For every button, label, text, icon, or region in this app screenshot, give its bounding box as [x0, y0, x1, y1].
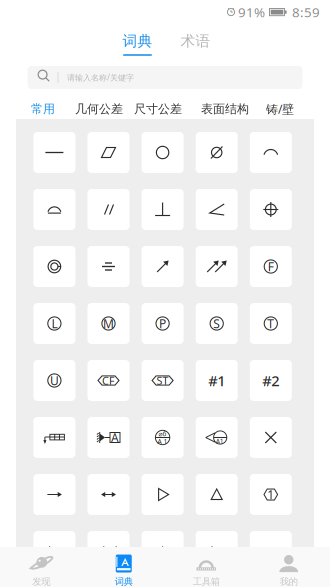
button[interactable]: Symbol	[87, 132, 129, 173]
button[interactable]: 发现	[0, 547, 82, 587]
button[interactable]: Symbol	[250, 189, 292, 230]
button[interactable]: Symbol	[196, 189, 238, 230]
staticText: ST	[157, 373, 169, 388]
button[interactable]: 词典	[82, 547, 165, 587]
button[interactable]: Symbol	[33, 303, 75, 344]
button[interactable]: Symbol	[142, 246, 184, 287]
staticText: 常用	[31, 102, 55, 116]
staticText: F	[268, 258, 274, 274]
button[interactable]: Symbol	[196, 360, 238, 401]
button[interactable]: Symbol	[33, 246, 75, 287]
button[interactable]: Symbol	[87, 303, 129, 344]
button[interactable]: Symbol	[33, 474, 75, 515]
staticText: A 1	[158, 437, 168, 446]
staticText: 我的	[280, 576, 298, 587]
staticText: 尺寸公差	[134, 102, 182, 116]
staticText: A	[111, 429, 119, 445]
staticText: 几何公差	[75, 102, 123, 116]
button[interactable]: 我的	[247, 547, 330, 587]
staticText: 发现	[32, 576, 50, 587]
staticText: S	[213, 315, 220, 331]
staticText: 术语	[180, 32, 210, 50]
staticText: M	[103, 315, 114, 331]
staticText: 1	[267, 486, 274, 502]
staticText: 请输入名称/关键字	[67, 72, 134, 83]
button[interactable]: Symbol	[33, 531, 75, 572]
button[interactable]: 几何公差	[75, 102, 123, 116]
staticText: A1	[216, 437, 224, 446]
button[interactable]: Symbol	[87, 360, 129, 401]
button[interactable]: 常用	[31, 102, 55, 116]
button[interactable]: Symbol	[142, 189, 184, 230]
staticText: L	[51, 315, 57, 331]
button[interactable]: 词典	[114, 33, 160, 57]
staticText: 表面结构	[201, 102, 249, 116]
button[interactable]: Symbol	[87, 474, 129, 515]
button[interactable]: Symbol	[33, 189, 75, 230]
staticText: 铸/壁	[266, 101, 294, 117]
staticText: CF	[102, 373, 115, 388]
button[interactable]: Symbol	[250, 303, 292, 344]
button[interactable]: Symbol	[196, 132, 238, 173]
button[interactable]: Symbol	[87, 246, 129, 287]
button[interactable]: Symbol	[196, 246, 238, 287]
button[interactable]: Symbol	[250, 360, 292, 401]
button[interactable]: Symbol	[250, 417, 292, 458]
staticText: 91%	[238, 3, 265, 21]
staticText: 词典	[115, 576, 133, 587]
button[interactable]: Symbol	[87, 531, 129, 572]
staticText: 词典	[122, 32, 152, 50]
staticText: ⌀6	[159, 429, 167, 438]
button[interactable]: Symbol	[196, 417, 238, 458]
button[interactable]: 工具箱	[165, 547, 247, 587]
button[interactable]: 术语	[172, 33, 218, 57]
staticText: T	[267, 315, 274, 331]
button[interactable]: Symbol	[87, 417, 129, 458]
button[interactable]: 请输入名称/关键字	[27, 66, 302, 89]
staticText: #1	[208, 371, 225, 390]
staticText: U	[50, 372, 59, 388]
staticText: P	[159, 315, 166, 331]
button[interactable]: Symbol	[250, 531, 292, 572]
button[interactable]: Symbol	[142, 132, 184, 173]
button[interactable]: Symbol	[250, 246, 292, 287]
button[interactable]: Symbol	[142, 303, 184, 344]
button[interactable]: Symbol	[250, 474, 292, 515]
staticText: 工具箱	[193, 576, 220, 587]
button[interactable]: Symbol	[87, 189, 129, 230]
button[interactable]: Symbol	[33, 132, 75, 173]
button[interactable]: 表面结构	[201, 102, 249, 116]
button[interactable]: Symbol	[196, 531, 238, 572]
button[interactable]: Symbol	[196, 474, 238, 515]
button[interactable]: Symbol	[33, 417, 75, 458]
button[interactable]: 铸/壁	[266, 101, 294, 117]
staticText: #2	[262, 371, 279, 390]
button[interactable]: Symbol	[142, 531, 184, 572]
button[interactable]: Symbol	[33, 360, 75, 401]
button[interactable]: Symbol	[142, 417, 184, 458]
button[interactable]: Symbol	[142, 474, 184, 515]
button[interactable]: Symbol	[142, 360, 184, 401]
button[interactable]: Symbol	[250, 132, 292, 173]
button[interactable]: Symbol	[196, 303, 238, 344]
button[interactable]: 尺寸公差	[134, 102, 182, 116]
staticText: 8:59	[292, 3, 320, 21]
